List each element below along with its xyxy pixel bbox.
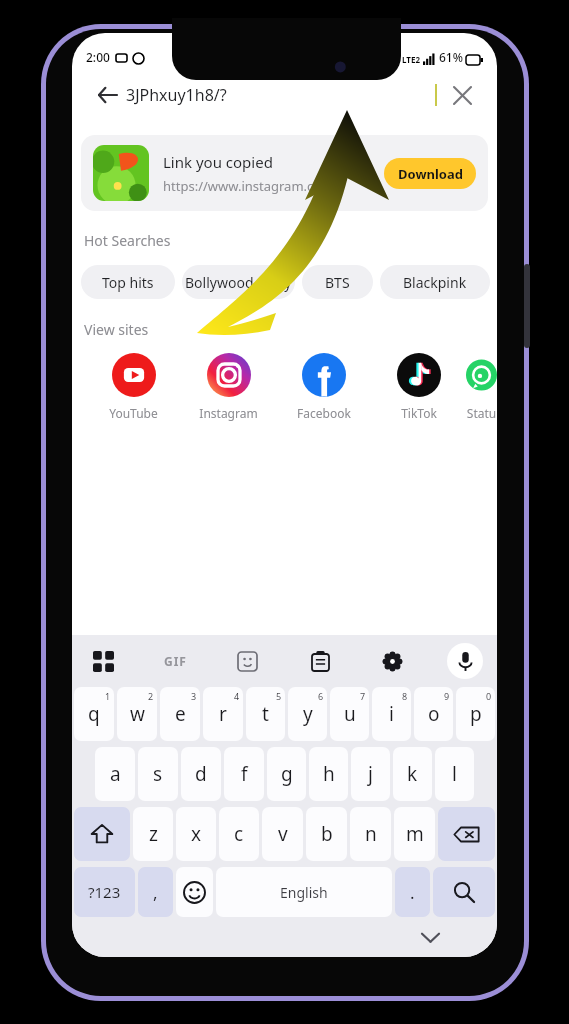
staticText: 0 [486, 690, 492, 702]
staticText: https://www.instagram.co [163, 177, 322, 195]
staticText: Instagram [199, 405, 258, 421]
staticText: k [407, 761, 418, 787]
staticText: BTS [325, 273, 350, 292]
staticText: t [262, 701, 269, 727]
staticText: Hot Searches [84, 231, 171, 250]
button[interactable]: b [306, 807, 347, 861]
button[interactable]: x [176, 807, 216, 861]
staticText: d [195, 761, 207, 787]
button[interactable]: English [216, 867, 392, 917]
staticText: LTE2 [402, 54, 420, 65]
button[interactable]: Top hits [81, 265, 175, 299]
button[interactable]: Instagram [181, 353, 276, 421]
button[interactable]: Search [433, 867, 495, 917]
button[interactable]: Shift [74, 807, 130, 861]
button[interactable]: s [138, 747, 178, 801]
button[interactable]: BTS [302, 265, 373, 299]
button[interactable]: TikTok [371, 353, 466, 421]
staticText: View sites [84, 320, 149, 339]
staticText: English [280, 883, 328, 902]
staticText: Bollywood Party [185, 273, 292, 292]
button[interactable]: Blackpink [380, 265, 490, 299]
button[interactable]: z [133, 807, 173, 861]
button[interactable]: . [395, 867, 430, 917]
staticText: Status [466, 405, 497, 421]
button[interactable]: o [414, 687, 453, 741]
button[interactable]: w [117, 687, 157, 741]
staticText: i [389, 701, 394, 727]
button[interactable]: g [267, 747, 306, 801]
button[interactable]: Clear [447, 80, 477, 110]
staticText: , [153, 881, 158, 904]
button[interactable]: ?123 [74, 867, 135, 917]
button[interactable]: Apps [86, 644, 120, 678]
staticText: o [428, 701, 440, 727]
staticText: 2 [148, 690, 154, 702]
button[interactable]: t [246, 687, 285, 741]
button[interactable]: Voice input [447, 643, 483, 679]
button[interactable]: f [224, 747, 264, 801]
button[interactable]: k [393, 747, 432, 801]
staticText: x [191, 821, 202, 847]
button[interactable]: n [350, 807, 391, 861]
button[interactable]: h [309, 747, 348, 801]
staticText: g [281, 761, 293, 787]
staticText: Link you copied [163, 152, 273, 172]
button[interactable]: Back [80, 70, 489, 120]
staticText: r [219, 701, 227, 727]
button[interactable]: d [181, 747, 221, 801]
staticText: Facebook [297, 405, 351, 421]
staticText: 1 [105, 690, 111, 702]
button[interactable]: Stickers [230, 644, 264, 678]
button[interactable]: Emoji [176, 867, 213, 917]
staticText: q [88, 701, 100, 727]
staticText: GIF [164, 653, 187, 669]
staticText: p [470, 701, 482, 727]
button[interactable]: Back [92, 80, 122, 110]
staticText: Download [398, 165, 463, 183]
staticText: m [406, 821, 424, 847]
button[interactable]: c [219, 807, 259, 861]
button[interactable]: , [138, 867, 173, 917]
button[interactable]: Bollywood Party [182, 265, 295, 299]
staticText: 8 [402, 690, 408, 702]
staticText: 7 [360, 690, 366, 702]
button[interactable]: q [74, 687, 114, 741]
button[interactable]: m [394, 807, 435, 861]
button[interactable]: Clipboard [303, 644, 337, 678]
button[interactable]: YouTube [86, 353, 181, 421]
button[interactable]: Link you copied [81, 135, 488, 211]
button[interactable]: Facebook [276, 353, 371, 421]
button[interactable]: p [456, 687, 495, 741]
button[interactable]: Settings [375, 644, 409, 678]
button[interactable]: u [330, 687, 369, 741]
staticText: 6 [318, 690, 324, 702]
button[interactable]: Status [466, 353, 497, 421]
staticText: 4 [234, 690, 240, 702]
staticText: ?123 [88, 882, 121, 902]
staticText: Blackpink [403, 273, 467, 292]
button[interactable]: e [160, 687, 200, 741]
button[interactable]: y [288, 687, 327, 741]
button[interactable]: Hide keyboard [415, 922, 445, 952]
staticText: 3JPhxuy1h8/?igsh=dnVmM3duN3d6cmk0 [126, 84, 435, 106]
staticText: YouTube [109, 405, 158, 421]
button[interactable]: GIF [158, 644, 192, 678]
button[interactable]: Download [384, 158, 476, 189]
staticText: u [344, 701, 356, 727]
staticText: z [149, 821, 158, 847]
button[interactable]: i [372, 687, 411, 741]
button[interactable]: l [435, 747, 474, 801]
staticText: j [368, 761, 373, 787]
staticText: 9 [444, 690, 450, 702]
button[interactable]: Backspace [438, 807, 495, 861]
button[interactable]: v [262, 807, 303, 861]
button[interactable]: j [351, 747, 390, 801]
button[interactable]: r [203, 687, 243, 741]
staticText: e [175, 701, 186, 727]
button[interactable]: a [95, 747, 135, 801]
staticText: a [110, 761, 121, 787]
staticText: Top hits [102, 273, 154, 292]
staticText: w [130, 701, 145, 727]
staticText: h [323, 761, 335, 787]
